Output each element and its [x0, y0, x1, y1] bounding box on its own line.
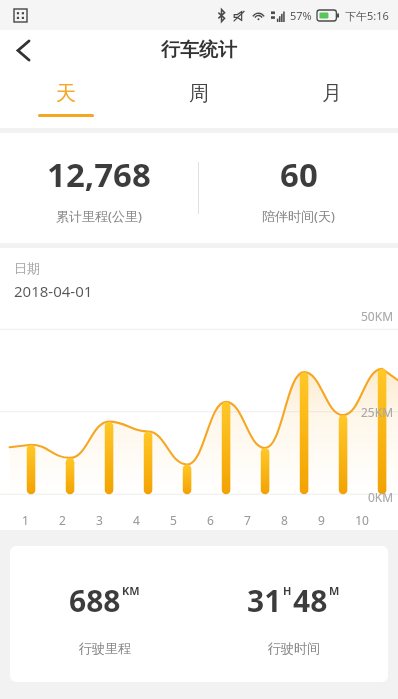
- staticText: 行驶里程: [79, 640, 131, 656]
- staticText: 天: [56, 81, 76, 106]
- button[interactable]: Back: [0, 30, 46, 70]
- staticText: 5: [170, 512, 177, 528]
- button[interactable]: 周: [132, 70, 265, 128]
- staticText: 1: [22, 512, 29, 528]
- staticText: 31: [247, 580, 282, 621]
- button[interactable]: 月: [265, 70, 398, 128]
- button[interactable]: 天: [0, 70, 132, 128]
- staticText: 7: [244, 512, 251, 528]
- staticText: 50KM: [361, 308, 394, 324]
- staticText: 48: [293, 580, 328, 621]
- staticText: H: [283, 583, 292, 598]
- staticText: 下午5:16: [345, 8, 389, 23]
- staticText: 陪伴时间(天): [262, 207, 335, 225]
- staticText: 3: [96, 512, 103, 528]
- staticText: M: [329, 583, 340, 598]
- staticText: KM: [122, 583, 140, 598]
- staticText: 57%: [290, 8, 312, 23]
- staticText: 25KM: [361, 404, 394, 420]
- staticText: 688: [69, 580, 121, 621]
- staticText: 日期: [14, 260, 40, 276]
- staticText: 4: [133, 512, 140, 528]
- staticText: 行驶时间: [268, 640, 320, 656]
- staticText: 6: [207, 512, 214, 528]
- staticText: 行车统计: [161, 38, 237, 62]
- staticText: 周: [189, 81, 209, 106]
- staticText: 10: [355, 512, 369, 528]
- staticText: 0KM: [368, 489, 394, 505]
- staticText: 60: [280, 152, 318, 197]
- staticText: 8: [281, 512, 288, 528]
- staticText: 月: [322, 81, 342, 106]
- staticText: 2: [59, 512, 66, 528]
- staticText: 累计里程(公里): [56, 207, 142, 225]
- staticText: 9: [318, 512, 325, 528]
- staticText: 12,768: [47, 152, 151, 197]
- staticText: 2018-04-01: [14, 281, 93, 301]
